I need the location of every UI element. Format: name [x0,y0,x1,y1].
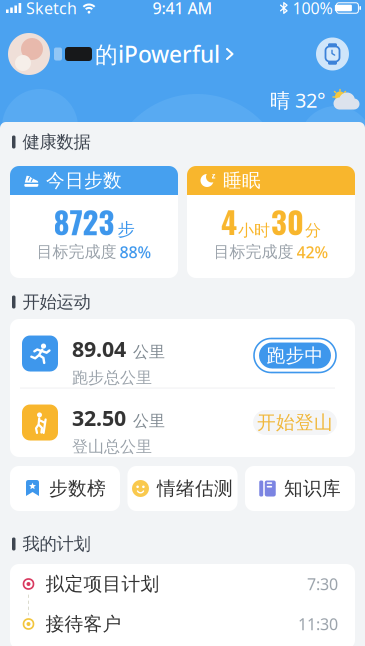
staticText: 步 [117,219,134,240]
button[interactable]: 的iPowerful [8,33,234,75]
staticText: 8723 [53,199,114,244]
staticText: 4 [221,199,237,244]
staticText: 睡眠 [223,169,261,192]
staticText: 晴 32° [270,87,326,113]
staticText: 步数榜 [49,477,106,500]
button[interactable]: 步数榜 [10,466,120,511]
staticText: 知识库 [284,477,341,500]
staticText: 88% [119,241,151,263]
staticText: 的iPowerful [95,39,220,69]
staticText: 我的计划 [22,533,90,555]
staticText: 开始登山 [257,411,333,434]
staticText: 9:41 AM [152,0,212,19]
staticText: 小时 [238,221,270,240]
staticText: 30 [271,199,304,244]
button[interactable]: 跑步中 [253,335,337,371]
button[interactable]: z [187,166,355,278]
button[interactable]: Watch device [316,37,349,70]
staticText: z [211,170,215,181]
staticText: 100% [292,0,332,19]
staticText: Sketch [26,0,77,19]
button[interactable]: 接待客户 [10,604,355,644]
button[interactable]: 拟定项目计划 [10,564,355,604]
staticText: 跑步总公里 [72,368,152,387]
staticText: 32.50 [72,403,126,432]
staticText: 公里 [133,342,165,362]
staticText: 42% [296,241,328,263]
staticText: 开始运动 [22,291,90,313]
staticText: 公里 [133,411,165,431]
staticText: 登山总公里 [72,437,152,456]
staticText: 目标完成度 [36,242,116,262]
staticText: 接待客户 [45,612,121,635]
button[interactable]: 知识库 [245,466,355,511]
staticText: 情绪估测 [157,477,233,500]
staticText: 7:30 [307,573,338,595]
button[interactable]: 情绪估测 [127,466,237,511]
staticText: 目标完成度 [213,242,293,262]
staticText: 89.04 [72,334,126,363]
staticText: 拟定项目计划 [45,572,159,595]
staticText: 跑步中 [266,344,323,367]
staticText: 健康数据 [22,131,90,153]
staticText: 分 [305,221,321,240]
staticText: 今日步数 [46,169,122,192]
button[interactable]: 今日步数 [10,166,178,278]
button[interactable]: 开始登山 [253,410,337,435]
staticText: 11:30 [298,613,338,635]
